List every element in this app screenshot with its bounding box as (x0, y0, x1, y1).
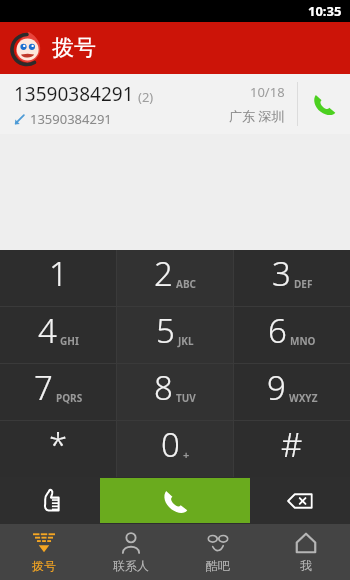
button[interactable]: 2 (117, 250, 233, 306)
button[interactable]: Backspace (250, 477, 350, 524)
other: App logo (12, 33, 42, 63)
staticText: 拨号 (32, 558, 56, 573)
button[interactable]: 3 (234, 250, 350, 306)
staticText: 3 (272, 251, 291, 296)
staticText: DEF (294, 277, 313, 291)
staticText: 1 (49, 251, 68, 296)
button[interactable]: 我 (262, 524, 350, 580)
staticText: + (183, 447, 190, 462)
staticText: (2) (138, 88, 154, 106)
button[interactable]: 7 (0, 364, 116, 420)
staticText: PQRS (56, 391, 83, 405)
staticText: * (49, 422, 68, 467)
staticText: 0 (161, 422, 180, 467)
button[interactable]: 13590384291 (0, 74, 350, 134)
button[interactable]: 0 (117, 421, 233, 477)
staticText: 7 (34, 365, 53, 410)
staticText: 6 (268, 308, 287, 353)
staticText: 9 (267, 365, 286, 410)
staticText: 广东 深圳 (229, 107, 285, 125)
staticText: 10:35 (308, 2, 342, 20)
staticText: 我 (300, 558, 312, 573)
button[interactable]: 拨号 (0, 524, 87, 580)
button[interactable]: 8 (117, 364, 233, 420)
button[interactable]: 6 (234, 307, 350, 363)
staticText: 2 (154, 251, 173, 296)
button[interactable]: Dial (100, 478, 250, 523)
button[interactable]: 9 (234, 364, 350, 420)
button[interactable]: # (234, 421, 350, 477)
button[interactable]: App logo (0, 22, 350, 74)
staticText: 酷吧 (206, 558, 230, 573)
staticText: MNO (290, 334, 316, 348)
staticText: 拨号 (52, 34, 96, 62)
button[interactable]: 联系人 (87, 524, 174, 580)
staticText: # (281, 422, 303, 467)
button[interactable]: 4 (0, 307, 116, 363)
button[interactable]: Call (298, 74, 350, 134)
button[interactable]: Recommend (0, 477, 100, 524)
staticText: 10/18 (250, 83, 285, 101)
button[interactable]: 酷吧 (174, 524, 262, 580)
button[interactable]: 5 (117, 307, 233, 363)
staticText: JKL (178, 334, 194, 348)
button[interactable]: 1 (0, 250, 116, 306)
staticText: 8 (154, 365, 173, 410)
staticText: ABC (176, 277, 196, 291)
staticText: 13590384291 (30, 110, 112, 128)
staticText: 4 (38, 308, 57, 353)
staticText: GHI (60, 334, 79, 348)
staticText: WXYZ (289, 391, 318, 405)
staticText: 联系人 (113, 558, 149, 573)
staticText: TUV (176, 391, 196, 405)
button[interactable]: * (0, 421, 116, 477)
staticText: 13590384291 (14, 81, 134, 107)
staticText: 5 (156, 308, 175, 353)
